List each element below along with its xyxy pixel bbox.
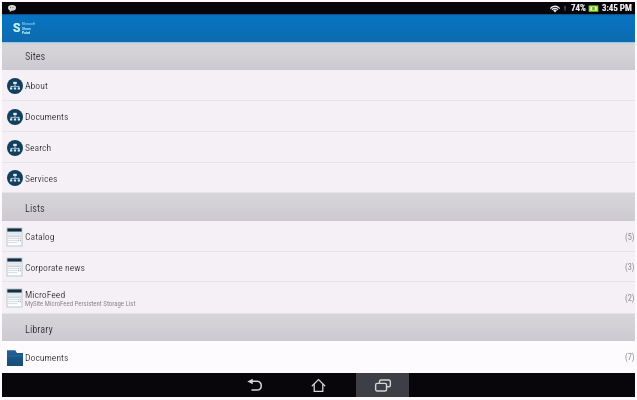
button[interactable]: About <box>2 70 635 101</box>
button[interactable]: Lists <box>2 193 635 221</box>
staticText: 3:45 PM <box>602 3 632 14</box>
button[interactable]: Recent apps <box>356 373 409 397</box>
button[interactable]: MicroFeed <box>2 282 635 314</box>
button[interactable]: Corporate news <box>2 252 635 282</box>
button[interactable]: Documents <box>2 341 635 373</box>
button[interactable]: Documents <box>2 101 635 132</box>
button[interactable]: Sites <box>2 45 635 70</box>
staticText: About <box>25 80 48 91</box>
button[interactable]: Library <box>2 314 635 341</box>
staticText: ! <box>564 4 566 13</box>
staticText: Documents <box>25 111 69 122</box>
staticText: Sites <box>25 50 46 62</box>
staticText: MicroFeed <box>25 289 66 300</box>
button[interactable]: Back <box>228 373 281 397</box>
staticText: Share <box>22 26 31 30</box>
staticText: MySite MicroFeed Persistent Storage List <box>25 300 136 308</box>
staticText: (7) <box>625 352 635 362</box>
staticText: 74% <box>571 3 586 14</box>
button[interactable]: Catalog <box>2 221 635 252</box>
staticText: Catalog <box>25 231 55 242</box>
staticText: Documents <box>25 352 69 363</box>
staticText: Point <box>22 30 31 34</box>
staticText: (3) <box>625 262 635 272</box>
staticText: (5) <box>625 232 635 242</box>
staticText: (2) <box>625 293 635 303</box>
button[interactable]: Search <box>2 132 635 163</box>
staticText: Search <box>25 142 52 153</box>
staticText: S <box>13 21 21 35</box>
staticText: Lists <box>25 202 45 214</box>
staticText: Corporate news <box>25 262 85 273</box>
staticText: Microsoft <box>22 22 36 26</box>
button[interactable]: Services <box>2 163 635 193</box>
staticText: Library <box>25 323 53 335</box>
button[interactable]: Home <box>292 373 345 397</box>
staticText: Services <box>25 173 58 184</box>
